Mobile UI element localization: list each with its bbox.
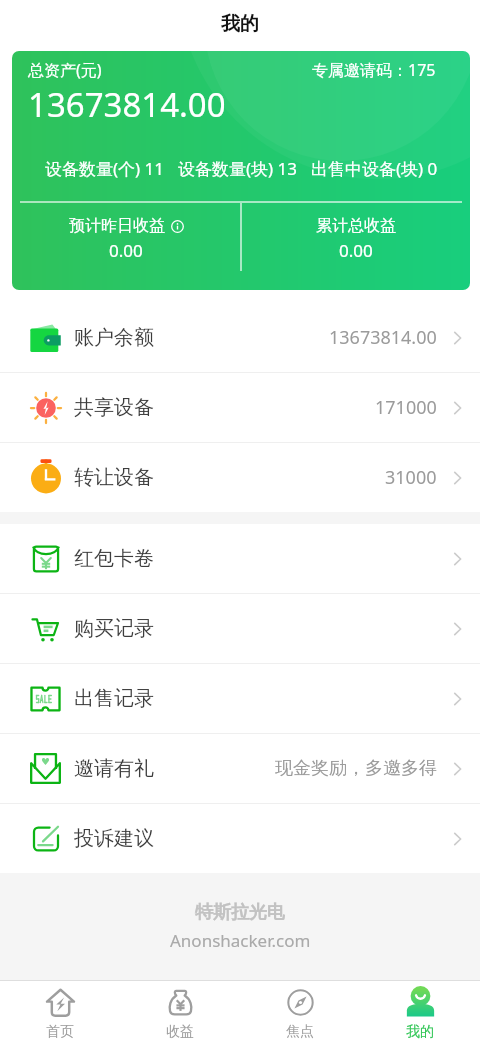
button[interactable]: 出售记录 — [0, 664, 480, 733]
staticText: 0.00 — [339, 239, 373, 262]
staticText: 现金奖励，多邀多得 — [275, 757, 437, 780]
staticText: 171000 — [375, 395, 437, 420]
button[interactable]: 收益 — [120, 981, 240, 1040]
button[interactable]: 邀请有礼 — [0, 734, 480, 803]
staticText: 0.00 — [109, 239, 143, 262]
button[interactable]: 转让设备 — [0, 443, 480, 512]
button[interactable]: 账户余额 — [0, 303, 480, 372]
button[interactable]: 共享设备 — [0, 373, 480, 442]
staticText: 购买记录 — [74, 616, 154, 641]
staticText: 专属邀请码：175 — [312, 59, 436, 81]
staticText: 累计总收益 — [316, 216, 396, 236]
staticText: 首页 — [46, 1023, 74, 1040]
button[interactable]: 红包卡卷 — [0, 524, 480, 593]
staticText: 账户余额 — [74, 325, 154, 350]
staticText: 出售中设备(块) 0 — [311, 157, 438, 180]
staticText: 设备数量(块) 13 — [178, 157, 298, 180]
button[interactable]: 购买记录 — [0, 594, 480, 663]
staticText: 共享设备 — [74, 395, 154, 420]
staticText: 转让设备 — [74, 465, 154, 490]
staticText: 邀请有礼 — [74, 756, 154, 781]
staticText: 我的 — [406, 1023, 434, 1040]
staticText: 特斯拉光电 — [195, 901, 285, 924]
button[interactable]: 我的 — [360, 981, 480, 1040]
staticText: 我的 — [221, 12, 259, 36]
staticText: 总资产(元) — [28, 59, 102, 81]
staticText: 出售记录 — [74, 686, 154, 711]
staticText: 红包卡卷 — [74, 546, 154, 571]
staticText: 预计昨日收益 — [69, 216, 165, 236]
staticText: Anonshacker.com — [170, 929, 311, 952]
staticText: 13673814.00 — [28, 82, 226, 127]
button[interactable]: 投诉建议 — [0, 804, 480, 873]
staticText: 设备数量(个) 11 — [45, 157, 165, 180]
staticText: 投诉建议 — [74, 826, 154, 851]
button[interactable]: 首页 — [0, 981, 120, 1040]
staticText: 31000 — [385, 465, 437, 490]
staticText: 收益 — [166, 1023, 194, 1040]
button[interactable]: 焦点 — [240, 981, 360, 1040]
staticText: 焦点 — [286, 1023, 314, 1040]
staticText: 13673814.00 — [329, 325, 437, 350]
